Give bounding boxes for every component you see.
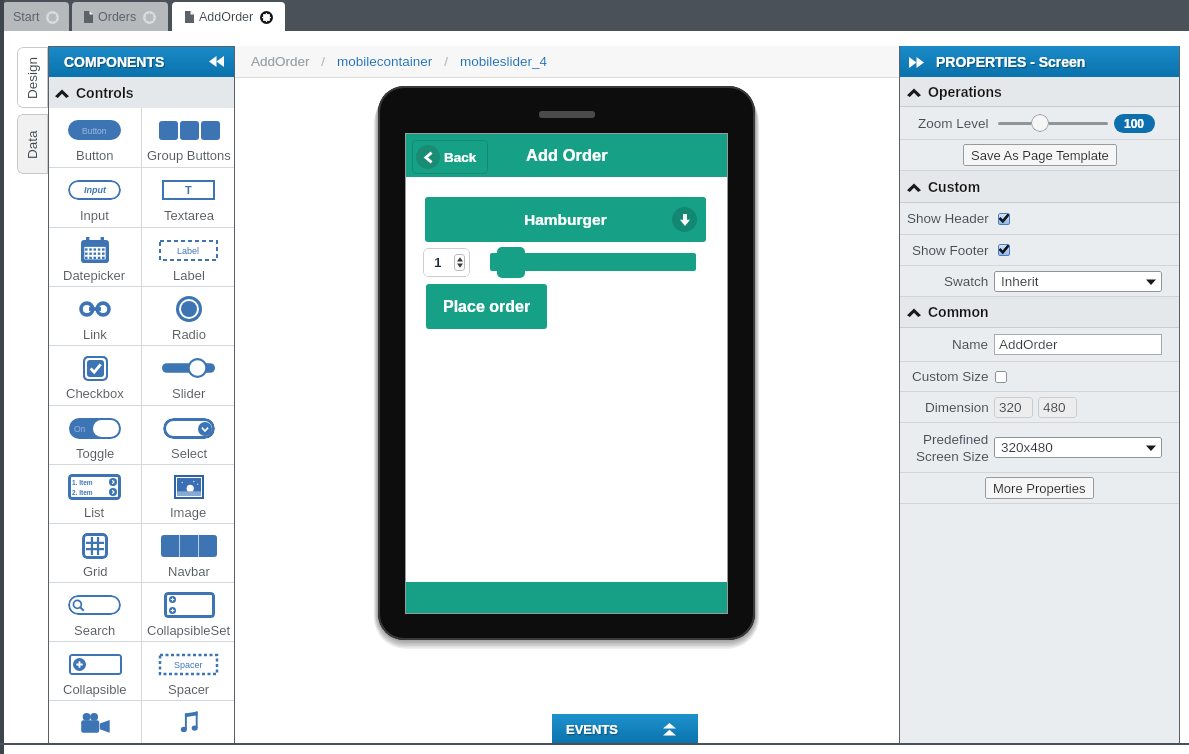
staticText: Controls [76,85,134,101]
button[interactable]: Back [412,140,488,174]
staticText: Show Header [907,211,989,226]
button[interactable]: Video [48,701,141,744]
staticText: Design [25,56,40,99]
staticText: Datepicker [63,268,126,283]
staticText: AddOrder [199,10,254,24]
button[interactable]: Design [17,47,48,108]
button[interactable]: Start [3,2,69,31]
staticText: 1. Item [72,479,93,486]
button[interactable]: Grid [48,524,141,583]
staticText: Link [83,327,107,342]
staticText: Predefined [923,432,989,447]
staticText: Add Order [526,146,608,164]
staticText: Custom Size [912,369,989,384]
staticText: EVENTS [566,722,619,737]
button[interactable] [998,213,1010,225]
button[interactable]: Radio [142,287,235,346]
button[interactable]: Navbar [142,524,235,583]
staticText: 100 [1124,117,1145,130]
staticText: Inherit [1001,274,1039,289]
button[interactable]: Controls [48,77,235,108]
button[interactable]: 480 [1038,397,1077,418]
staticText: Collapsible [63,682,127,697]
staticText: 480 [1043,400,1066,415]
button[interactable]: 1 [423,248,470,277]
button[interactable]: 320x480 [994,437,1162,458]
staticText: Show Footer [912,243,989,258]
button[interactable]: 1. Item [48,465,141,524]
staticText: Swatch [944,274,989,289]
button[interactable]: Collapsible [48,642,141,701]
staticText: Spacer [174,660,203,670]
staticText: Dimension [925,400,989,415]
button[interactable]: Common [899,297,1180,327]
button[interactable]: Checkbox [48,346,141,406]
button[interactable] [497,247,525,278]
staticText: Input [84,185,106,195]
button[interactable]: Inherit [994,271,1162,292]
staticText: Start [13,10,40,24]
staticText: On [74,424,86,433]
button[interactable]: Image [142,465,235,524]
button[interactable]: Custom [899,171,1180,202]
staticText: Image [170,505,207,520]
button[interactable] [998,244,1010,256]
staticText: Hamburger [524,211,607,228]
button[interactable]: On [48,406,141,465]
button[interactable]: Select [142,406,235,465]
staticText: Save As Page Template [971,148,1109,163]
button[interactable]: T [142,168,235,228]
staticText: Video [78,741,112,744]
staticText: Textarea [164,208,214,223]
button[interactable]: Orders [72,2,168,31]
button[interactable]: Operations [899,77,1180,106]
button[interactable]: Label [142,228,235,287]
button[interactable]: Input [48,168,141,228]
staticText: Orders [98,10,137,24]
button[interactable]: Place order [426,284,547,329]
staticText: Slider [172,386,206,401]
button[interactable]: 320 [994,397,1033,418]
button[interactable]: AddOrder [251,54,310,69]
button[interactable] [995,371,1007,383]
button[interactable]: AddOrder [994,334,1162,355]
button[interactable]: AddOrder [172,2,285,31]
staticText: 1 [434,255,442,270]
staticText: 320x480 [1001,440,1053,455]
button[interactable]: mobilecontainer [337,54,433,69]
staticText: Custom [928,179,981,195]
button[interactable]: mobileslider_4 [460,54,548,69]
button[interactable]: Save As Page Template [971,144,1109,166]
staticText: Group Buttons [147,148,231,163]
button[interactable]: Data [17,114,48,174]
button[interactable]: Search [48,583,141,642]
staticText: Back [444,150,477,165]
staticText: Place order [443,298,531,316]
staticText: PROPERTIES - Screen [936,54,1086,70]
button[interactable]: Link [48,287,141,346]
button[interactable]: Group Buttons [142,108,235,168]
button[interactable]: PROPERTIES - Screen [899,46,1180,77]
button[interactable]: Hamburger [425,197,706,242]
button[interactable]: Spacer [142,642,235,701]
button[interactable]: Button [48,108,141,168]
button[interactable]: EVENTS [552,714,698,744]
staticText: Label [173,268,205,283]
staticText: Label [177,246,200,256]
staticText: Navbar [168,564,210,579]
staticText: Operations [928,84,1002,100]
button[interactable]: Audio [142,701,235,744]
staticText: Toggle [76,446,115,461]
staticText: Input [80,208,109,223]
button[interactable]: More Properties [993,477,1086,499]
staticText: AddOrder [999,337,1058,352]
staticText: Screen Size [916,449,989,464]
button[interactable]: Slider [142,346,235,406]
staticText: Search [74,623,116,638]
button[interactable]: COMPONENTS [48,46,235,77]
button[interactable]: CollapsibleSet [142,583,235,642]
button[interactable]: Datepicker [48,228,141,287]
staticText: Zoom Level [918,116,989,131]
staticText: 2. Item [72,489,93,496]
staticText: CollapsibleSet [147,623,231,638]
